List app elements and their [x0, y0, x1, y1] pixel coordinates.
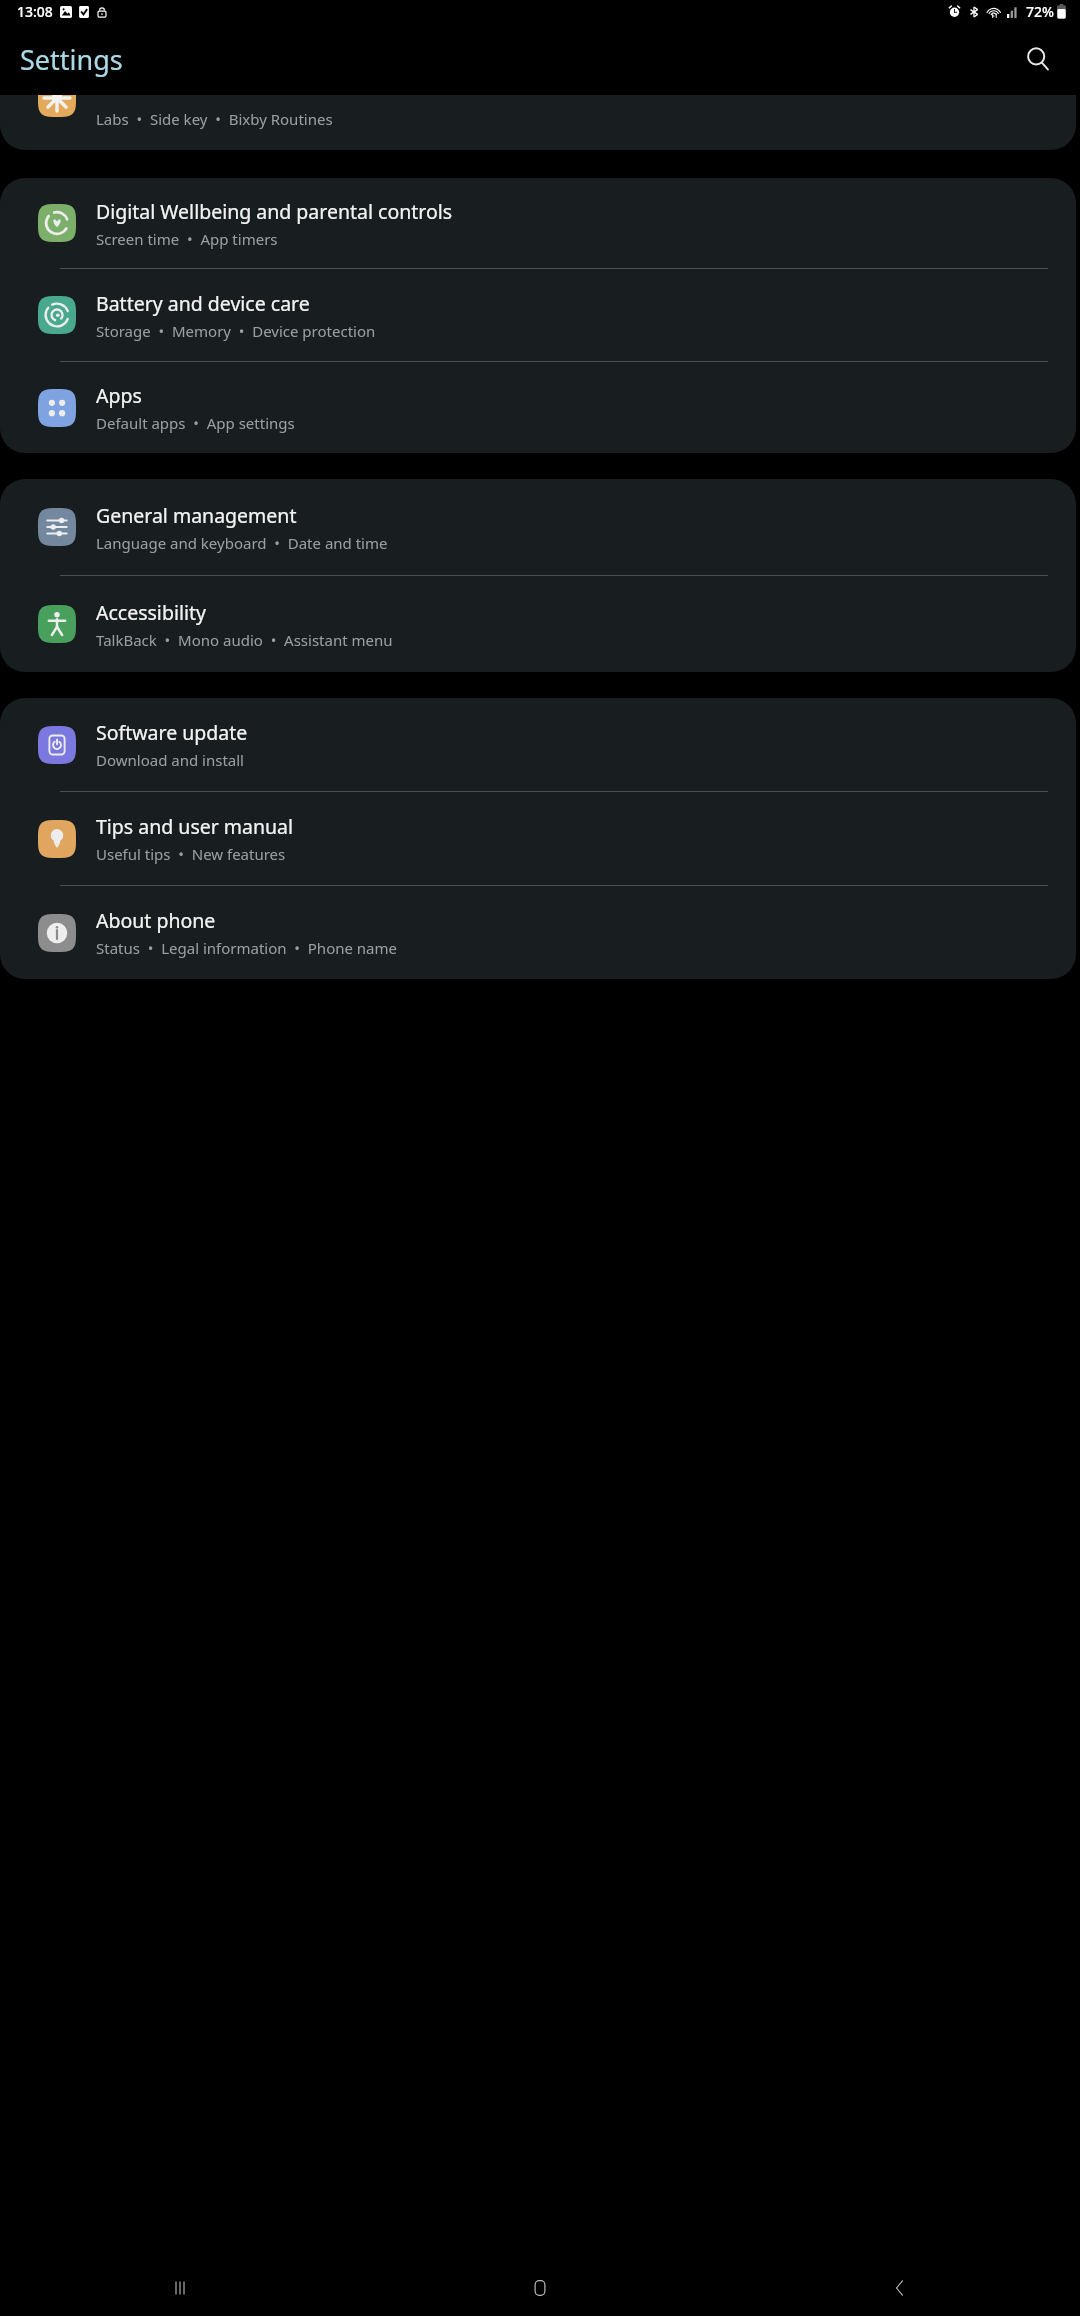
staticText: Tips and user manual	[96, 813, 294, 840]
staticText: Settings	[20, 41, 123, 78]
staticText: Language and keyboard • Date and time	[96, 533, 388, 553]
button[interactable]: Digital Wellbeing and parental controls	[0, 178, 1076, 268]
button[interactable]: Tips and user manual	[0, 792, 1076, 885]
staticText: 72%	[1026, 2, 1054, 21]
button[interactable]: Accessibility	[0, 576, 1076, 672]
staticText: Default apps • App settings	[96, 413, 295, 433]
staticText: Status • Legal information • Phone name	[96, 938, 398, 958]
staticText: Storage • Memory • Device protection	[96, 321, 376, 341]
staticText: Screen time • App timers	[96, 229, 278, 249]
button[interactable]: About phone	[0, 886, 1076, 979]
staticText: 13:08	[17, 2, 53, 21]
button[interactable]: General management	[0, 479, 1076, 575]
button[interactable]: Labs • Side key • Bixby Routines	[0, 95, 1076, 150]
button[interactable]: Apps	[0, 362, 1076, 453]
staticText: General management	[96, 502, 297, 529]
button[interactable]: Home	[360, 2264, 720, 2312]
staticText: Battery and device care	[96, 290, 310, 317]
staticText: Download and install	[96, 750, 244, 770]
staticText: Useful tips • New features	[96, 844, 286, 864]
staticText: Accessibility	[96, 599, 206, 626]
staticText: About phone	[96, 907, 216, 934]
staticText: Software update	[96, 719, 248, 746]
button[interactable]: Software update	[0, 698, 1076, 791]
staticText: Apps	[96, 382, 142, 409]
staticText: TalkBack • Mono audio • Assistant menu	[96, 630, 393, 650]
button[interactable]: Battery and device care	[0, 269, 1076, 361]
staticText: Labs • Side key • Bixby Routines	[96, 109, 333, 129]
staticText: Digital Wellbeing and parental controls	[96, 198, 453, 225]
button[interactable]: Back	[720, 2264, 1080, 2312]
button[interactable]: Recent apps	[0, 2264, 360, 2312]
button[interactable]: Search	[1016, 37, 1060, 81]
